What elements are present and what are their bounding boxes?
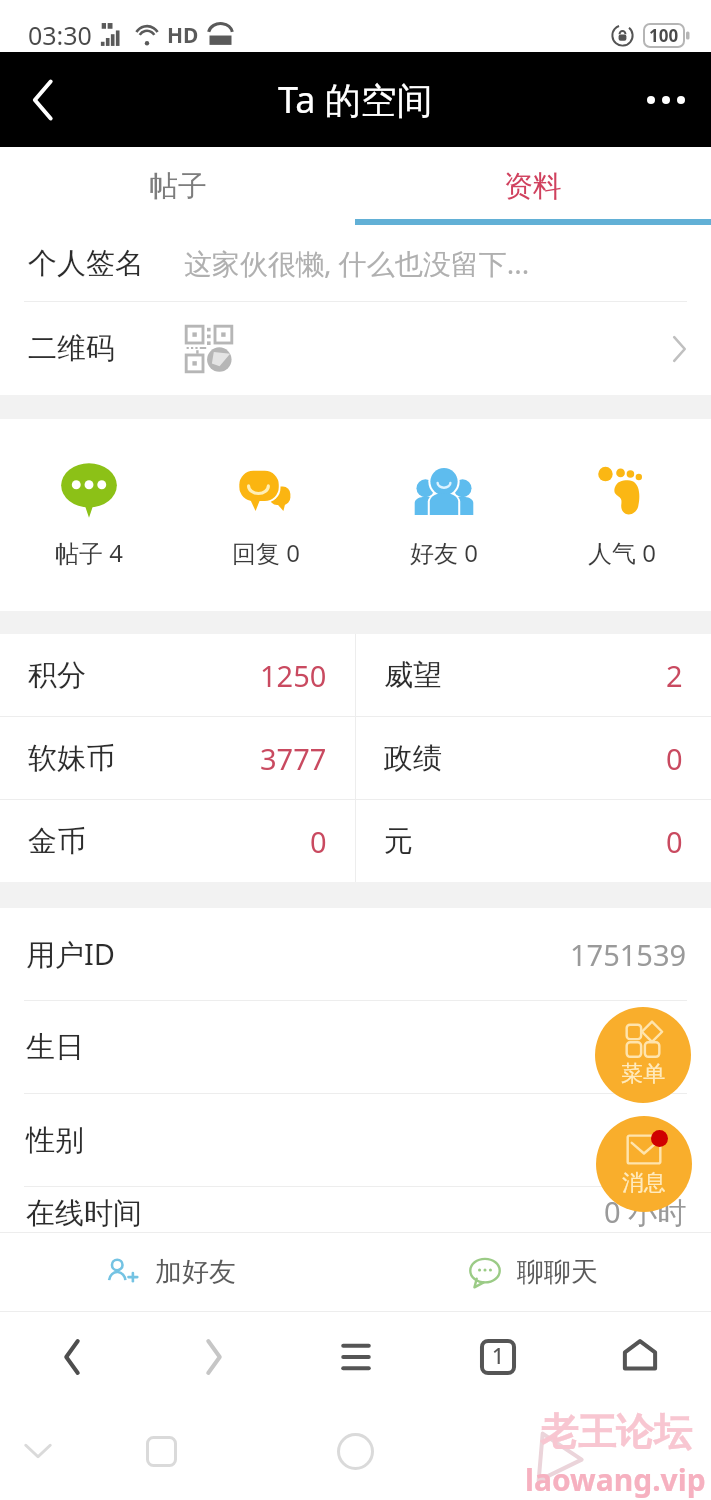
button[interactable]: 人气 0 [533,419,711,611]
button[interactable]: 用户ID [0,908,711,1000]
staticText: 0 [666,739,683,778]
button[interactable]: 聊聊天 [355,1233,711,1311]
staticText: 消息 [622,1169,666,1197]
button[interactable]: 金币 [0,800,355,882]
button[interactable]: Menu [285,1312,427,1401]
button[interactable]: 积分 [0,634,355,716]
button[interactable]: Recents [136,1426,186,1476]
staticText: 3777 [260,739,327,778]
staticText: 人气 0 [588,536,656,569]
button[interactable]: 个人签名 [0,225,711,301]
staticText: 帖子 [149,168,207,205]
staticText: 威望 [384,657,442,694]
staticText: 二维码 [28,330,115,367]
staticText: 好友 0 [410,536,478,569]
staticText: 金币 [28,823,86,860]
button[interactable]: 元 [356,800,711,882]
button[interactable]: Home [330,1426,380,1476]
button[interactable]: 资料 [355,147,711,225]
staticText: Ta 的空间 [278,75,433,124]
staticText: 生日 [26,1029,84,1066]
button[interactable]: 威望 [356,634,711,716]
button[interactable]: 帖子 4 [0,419,177,611]
staticText: 个人签名 [28,245,144,282]
staticText: 性别 [26,1122,84,1159]
staticText: 软妹币 [28,740,115,777]
button[interactable]: 菜单 [595,1007,691,1103]
button[interactable]: Forward [143,1312,285,1401]
staticText: 0 [666,822,683,861]
button[interactable]: More options [621,52,711,147]
staticText: 用户ID [26,934,116,974]
staticText: 资料 [504,168,562,205]
staticText: 0 小时 [604,1192,687,1232]
staticText: 积分 [28,657,86,694]
staticText: 在线时间 [26,1195,142,1232]
staticText: 菜单 [621,1060,665,1088]
staticText: 1 [492,1342,505,1371]
button[interactable]: 软妹币 [0,717,355,799]
staticText: HD [167,21,199,50]
button[interactable]: 性别 [0,1094,711,1186]
staticText: 政绩 [384,740,442,777]
staticText: 2 [666,656,683,695]
staticText: 1751539 [570,935,687,974]
staticText: 03:30 [28,18,92,52]
staticText: 回复 0 [232,536,300,569]
staticText: 这家伙很懒, 什么也没留下... [184,244,530,282]
staticText: laowang.vip [525,1459,706,1500]
staticText: 帖子 4 [55,536,123,569]
button[interactable]: 帖子 [0,147,355,225]
staticText: 元 [384,823,413,860]
button[interactable]: 回复 0 [177,419,355,611]
button[interactable]: 在线时间 [0,1187,711,1232]
button[interactable]: 生日 [0,1001,711,1093]
button[interactable]: Hide keyboard [13,1426,63,1476]
staticText: 加好友 [155,1255,236,1289]
button[interactable]: Back [0,52,86,147]
button[interactable]: 消息 [596,1116,692,1212]
button[interactable]: 二维码 [0,302,711,395]
button[interactable]: 政绩 [356,717,711,799]
button[interactable]: Back [0,1312,143,1401]
staticText: 100 [649,24,679,47]
staticText: 聊聊天 [517,1255,598,1289]
staticText: 0 [310,822,327,861]
button[interactable]: Tabs [427,1312,569,1401]
button[interactable]: Home [569,1312,711,1401]
button[interactable]: 加好友 [0,1233,355,1311]
button[interactable]: 好友 0 [355,419,533,611]
staticText: 老王论坛 [540,1408,692,1456]
staticText: 1250 [260,656,327,695]
